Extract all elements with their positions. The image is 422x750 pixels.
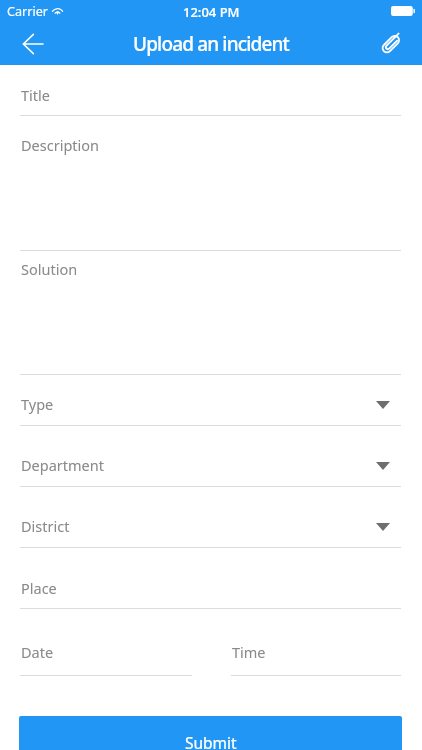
staticText: District <box>21 516 70 536</box>
button[interactable]: Description <box>20 130 401 251</box>
staticText: Submit <box>185 732 237 750</box>
button[interactable]: Department <box>20 450 401 487</box>
button[interactable]: Place <box>20 573 401 609</box>
staticText: Upload an incident <box>133 31 289 57</box>
staticText: Type <box>21 394 54 414</box>
button[interactable]: Title <box>20 80 401 116</box>
button[interactable]: Back <box>12 23 54 65</box>
staticText: Description <box>21 135 100 155</box>
button[interactable]: District <box>20 511 401 548</box>
staticText: Place <box>21 578 57 598</box>
button[interactable]: Time <box>231 637 401 676</box>
staticText: Department <box>21 455 104 475</box>
button[interactable]: Submit <box>19 716 402 750</box>
staticText: Date <box>21 642 54 662</box>
button[interactable]: Solution <box>20 254 401 375</box>
staticText: Solution <box>21 259 78 279</box>
staticText: 12:04 PM <box>183 3 240 21</box>
staticText: Title <box>21 85 50 105</box>
button[interactable]: Type <box>20 389 401 426</box>
button[interactable]: Attach file <box>370 23 412 65</box>
staticText: Time <box>232 642 266 662</box>
staticText: Carrier <box>7 3 48 20</box>
button[interactable]: Date <box>20 637 192 676</box>
